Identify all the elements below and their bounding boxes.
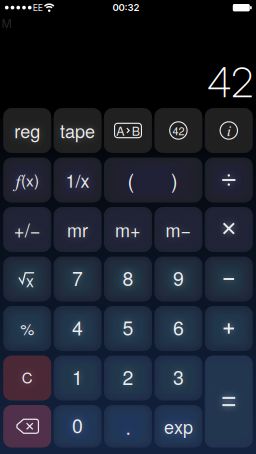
staticText: C — [22, 366, 33, 388]
button[interactable]: C — [3, 355, 51, 400]
button[interactable]: f — [3, 157, 51, 202]
button[interactable]: 4 — [54, 306, 102, 351]
button[interactable]: mr — [54, 207, 102, 252]
button[interactable]: Add — [205, 306, 253, 351]
staticText: x — [26, 269, 34, 292]
staticText: . — [125, 412, 130, 440]
button[interactable]: 5 — [104, 306, 152, 351]
staticText: mr — [67, 217, 88, 242]
button[interactable]: Equals — [205, 355, 253, 447]
staticText: % — [20, 317, 34, 340]
button[interactable]: exp — [154, 405, 202, 447]
staticText: ( — [127, 166, 134, 194]
staticText: 7 — [72, 264, 83, 291]
staticText: reg — [14, 118, 40, 143]
button[interactable]: ( — [104, 157, 202, 202]
button[interactable]: m− — [154, 207, 202, 252]
button[interactable]: Convert — [104, 108, 152, 153]
staticText: 3 — [173, 363, 184, 390]
button[interactable]: 2 — [104, 355, 152, 400]
staticText: 5 — [122, 313, 133, 341]
staticText: 6 — [173, 313, 184, 341]
button[interactable]: % — [3, 306, 51, 351]
staticText: EE — [33, 3, 43, 13]
button[interactable]: 1 — [54, 355, 102, 400]
button[interactable]: Square root — [3, 256, 51, 301]
button[interactable]: 3 — [154, 355, 202, 400]
button[interactable]: 8 — [104, 256, 152, 301]
staticText: M — [2, 17, 12, 31]
staticText: 42 — [207, 57, 254, 107]
staticText: m− — [165, 217, 191, 242]
staticText: 4 — [72, 313, 83, 341]
staticText: tape — [60, 118, 95, 143]
button[interactable]: . — [104, 405, 152, 447]
staticText: 0 — [72, 411, 83, 439]
staticText: A — [116, 122, 124, 139]
staticText: ) — [171, 166, 178, 194]
staticText: f — [15, 168, 20, 192]
button[interactable]: Backspace — [3, 405, 51, 447]
button[interactable]: Base — [154, 108, 202, 153]
staticText: B — [132, 122, 140, 139]
button[interactable]: 0 — [54, 405, 102, 447]
staticText: 2 — [122, 363, 133, 390]
button[interactable]: Info — [205, 108, 253, 153]
button[interactable]: m+ — [104, 207, 152, 252]
button[interactable]: Divide — [205, 157, 253, 202]
staticText: 9 — [173, 264, 184, 291]
button[interactable]: reg — [3, 108, 51, 153]
button[interactable]: 9 — [154, 256, 202, 301]
staticText: 42 — [172, 123, 184, 138]
staticText: 1/x — [66, 167, 90, 193]
staticText: +/− — [14, 216, 41, 243]
button[interactable]: +/− — [3, 207, 51, 252]
button[interactable]: 7 — [54, 256, 102, 301]
staticText: m+ — [115, 217, 141, 242]
button[interactable]: 6 — [154, 306, 202, 351]
staticText: 1 — [72, 363, 83, 390]
staticText: i — [227, 120, 231, 140]
staticText: 8 — [122, 264, 133, 291]
staticText: exp — [164, 413, 193, 439]
button[interactable]: 1/x — [54, 157, 102, 202]
button[interactable]: Subtract — [205, 256, 253, 301]
button[interactable]: Multiply — [205, 207, 253, 252]
button[interactable]: tape — [54, 108, 102, 153]
staticText: 00:32 — [112, 2, 139, 13]
staticText: (x) — [21, 169, 39, 191]
